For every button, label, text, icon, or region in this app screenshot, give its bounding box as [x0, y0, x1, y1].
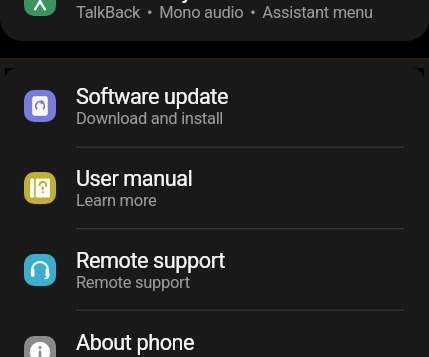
staticText: Remote support	[76, 273, 190, 292]
button[interactable]: About phone	[0, 311, 429, 357]
staticText: Learn more	[76, 191, 157, 210]
staticText: User manual	[76, 166, 193, 191]
button[interactable]: User manual	[0, 147, 429, 229]
button[interactable]: Software update	[0, 65, 429, 147]
staticText: Download and install	[76, 109, 224, 128]
button[interactable]: Accessibility	[0, 0, 429, 41]
staticText: Accessibility	[76, 0, 192, 3]
staticText: Remote support	[76, 248, 225, 273]
button[interactable]: Remote support	[0, 229, 429, 311]
staticText: Software update	[76, 84, 229, 109]
staticText: TalkBack • Mono audio • Assistant menu	[76, 3, 373, 22]
staticText: About phone	[76, 330, 195, 355]
